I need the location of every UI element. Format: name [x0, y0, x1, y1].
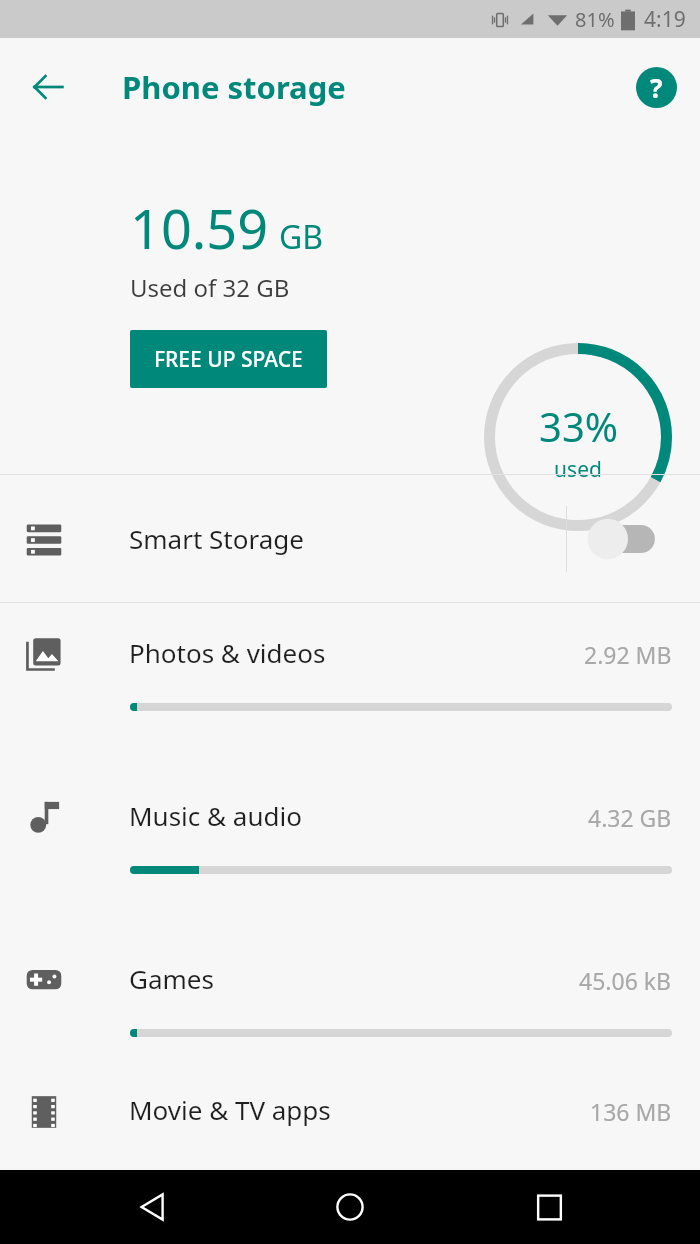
staticText: 2.92 MB [584, 639, 672, 670]
staticText: Movie & TV apps [129, 1092, 331, 1127]
staticText: FREE UP SPACE [154, 345, 303, 374]
staticText: 4.32 GB [588, 802, 672, 833]
staticText: 33% [539, 399, 618, 453]
staticText: used [554, 455, 602, 484]
staticText: GB [279, 215, 324, 259]
staticText: Games [129, 961, 214, 996]
button[interactable]: Photos & videos [0, 603, 700, 766]
button[interactable]: Games [0, 929, 700, 1092]
staticText: 10.59 [130, 191, 269, 265]
staticText: Smart Storage [129, 521, 304, 556]
button[interactable]: Recent apps [521, 1179, 577, 1235]
button[interactable]: Movie & TV apps [0, 1092, 700, 1172]
staticText: 45.06 kB [579, 965, 672, 996]
button[interactable]: Help [632, 63, 680, 111]
staticText: ? [650, 70, 663, 105]
button[interactable]: Back [125, 1179, 181, 1235]
staticText: 4:19 [644, 5, 686, 34]
staticText: Used of 32 GB [130, 271, 290, 304]
staticText: Phone storage [122, 66, 346, 108]
staticText: Photos & videos [129, 635, 326, 670]
staticText: Music & audio [129, 798, 302, 833]
button[interactable]: Smart Storage toggle [586, 511, 670, 567]
staticText: 136 MB [590, 1096, 672, 1127]
button[interactable]: FREE UP SPACE [130, 330, 327, 388]
button[interactable]: Music & audio [0, 766, 700, 929]
button[interactable]: Back [22, 61, 74, 113]
button[interactable]: Smart Storage [0, 475, 700, 602]
button[interactable]: Home [322, 1179, 378, 1235]
staticText: 81% [575, 6, 615, 33]
